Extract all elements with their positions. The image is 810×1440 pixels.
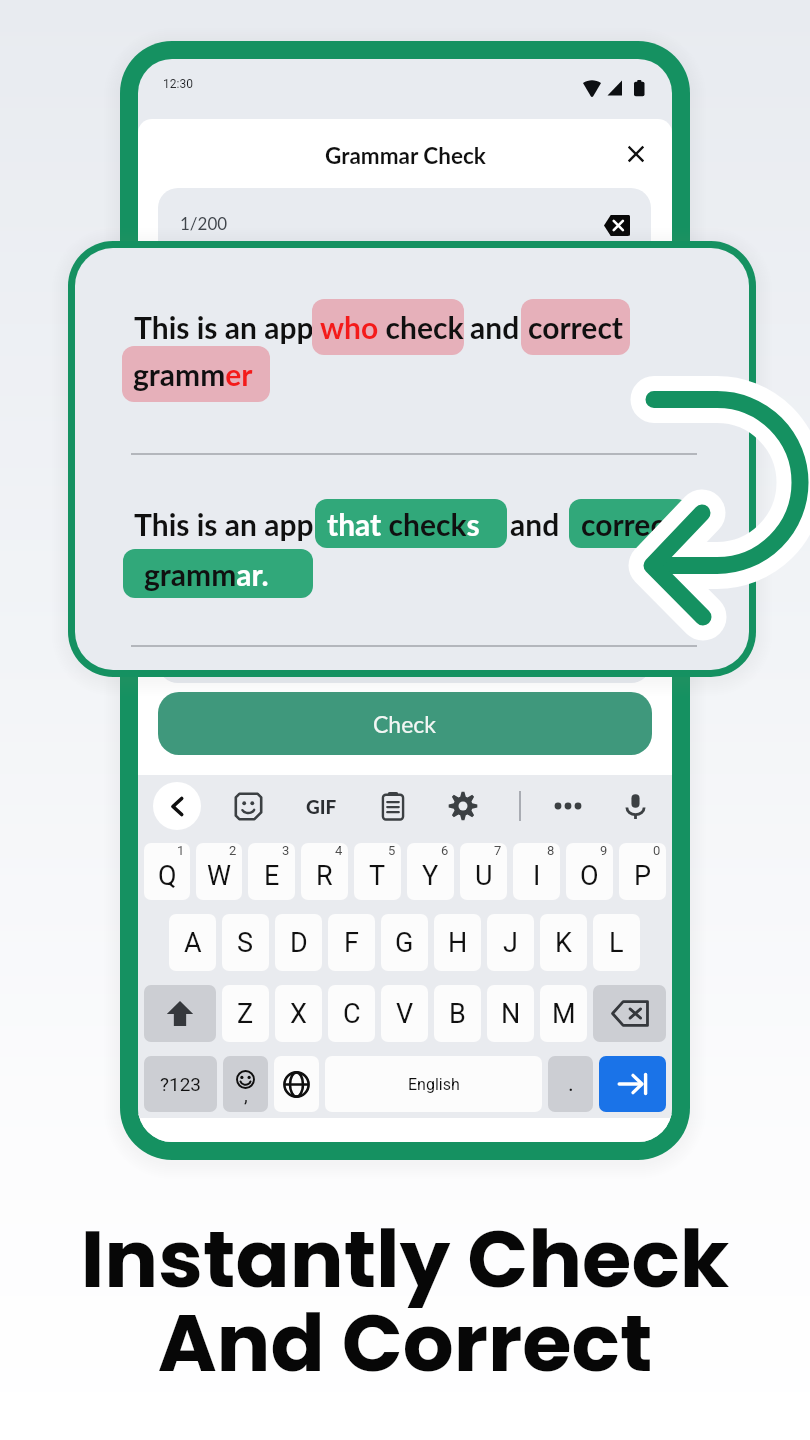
staticText: grammar. [144,556,269,592]
button[interactable]: O [566,843,613,900]
button[interactable]: Emoji [223,1056,268,1112]
button[interactable]: V [381,985,428,1042]
button[interactable]: I [513,843,560,900]
staticText: C [343,998,361,1030]
staticText: A [184,927,202,959]
button[interactable]: Enter [599,1056,666,1112]
staticText: Y [422,860,439,892]
staticText: 5 [388,843,396,858]
staticText: S [237,927,254,959]
staticText: D [290,927,308,959]
staticText: 1/200 [180,213,228,233]
staticText: 4 [335,843,343,858]
staticText: T [369,860,386,892]
staticText: W [207,860,231,892]
button[interactable]: F [328,914,375,971]
button[interactable]: Y [407,843,454,900]
button[interactable]: W [196,843,242,900]
staticText: O [580,860,599,892]
staticText: Z [237,998,254,1030]
button[interactable]: P [619,843,666,900]
button[interactable]: S [222,914,269,971]
staticText: correct [581,506,677,542]
button[interactable]: C [328,985,375,1042]
staticText: and [470,309,520,345]
button[interactable]: Clear text [594,202,640,248]
button[interactable]: Z [222,985,269,1042]
button[interactable]: mic [614,785,656,827]
staticText: Grammar Check [325,142,486,169]
staticText: I [533,860,541,892]
button[interactable]: . [548,1056,593,1112]
staticText: L [609,927,624,959]
button[interactable]: M [540,985,587,1042]
button[interactable]: H [434,914,481,971]
button[interactable]: sticker [227,785,269,827]
button[interactable]: dots [547,785,589,827]
button[interactable]: U [460,843,507,900]
button[interactable]: E [248,843,295,900]
staticText: This is an app [134,309,314,345]
staticText: K [555,927,572,959]
staticText: that checks [327,506,480,542]
staticText: M [552,998,576,1030]
staticText: Q [158,860,177,892]
button[interactable]: Backspace [593,985,666,1042]
button[interactable]: R [301,843,348,900]
staticText: V [396,998,414,1030]
button[interactable]: Close [616,134,656,174]
button[interactable]: A [169,914,216,971]
button[interactable]: Shift [144,985,216,1042]
button[interactable]: K [540,914,587,971]
button[interactable]: B [434,985,481,1042]
staticText: 6 [441,843,449,858]
button[interactable]: gear [442,785,484,827]
staticText: . [568,1071,574,1097]
button[interactable]: G [381,914,428,971]
button[interactable]: N [487,985,534,1042]
staticText: 9 [600,843,608,858]
staticText: , [244,1084,248,1106]
staticText: ?123 [160,1073,202,1095]
staticText: This is an app [134,506,314,542]
staticText: N [501,998,521,1030]
button[interactable]: clip [372,785,414,827]
staticText: J [503,927,518,959]
button[interactable]: Check [158,692,652,755]
staticText: 8 [547,843,555,858]
button[interactable]: Back [153,782,201,830]
button[interactable]: gif [300,785,342,827]
staticText: 0 [653,843,661,858]
staticText: correct [528,309,624,345]
button[interactable]: Change language [274,1056,319,1112]
staticText: 1 [177,843,185,858]
button[interactable]: D [275,914,322,971]
staticText: Check [373,710,437,738]
button[interactable]: English [325,1056,542,1112]
staticText: Instantly Check And Correct [0,1203,810,1399]
staticText: 2 [229,843,237,858]
staticText: English [408,1075,460,1094]
staticText: E [264,860,280,892]
staticText: X [290,998,307,1030]
staticText: 7 [494,843,502,858]
staticText: and [510,506,560,542]
staticText: G [395,927,414,959]
button[interactable]: L [593,914,640,971]
button[interactable]: J [487,914,534,971]
button[interactable]: T [354,843,401,900]
staticText: who check [320,309,464,345]
staticText: 12:30 [163,77,193,91]
button[interactable]: X [275,985,322,1042]
staticText: GIF [306,795,337,818]
staticText: P [634,860,652,892]
staticText: B [449,998,466,1030]
staticText: R [316,860,333,892]
staticText: 3 [282,843,290,858]
staticText: U [475,860,493,892]
button[interactable]: ?123 [144,1056,217,1112]
staticText: grammer [133,356,253,392]
staticText: H [448,927,468,959]
button[interactable]: Q [144,843,190,900]
staticText: F [344,927,359,959]
